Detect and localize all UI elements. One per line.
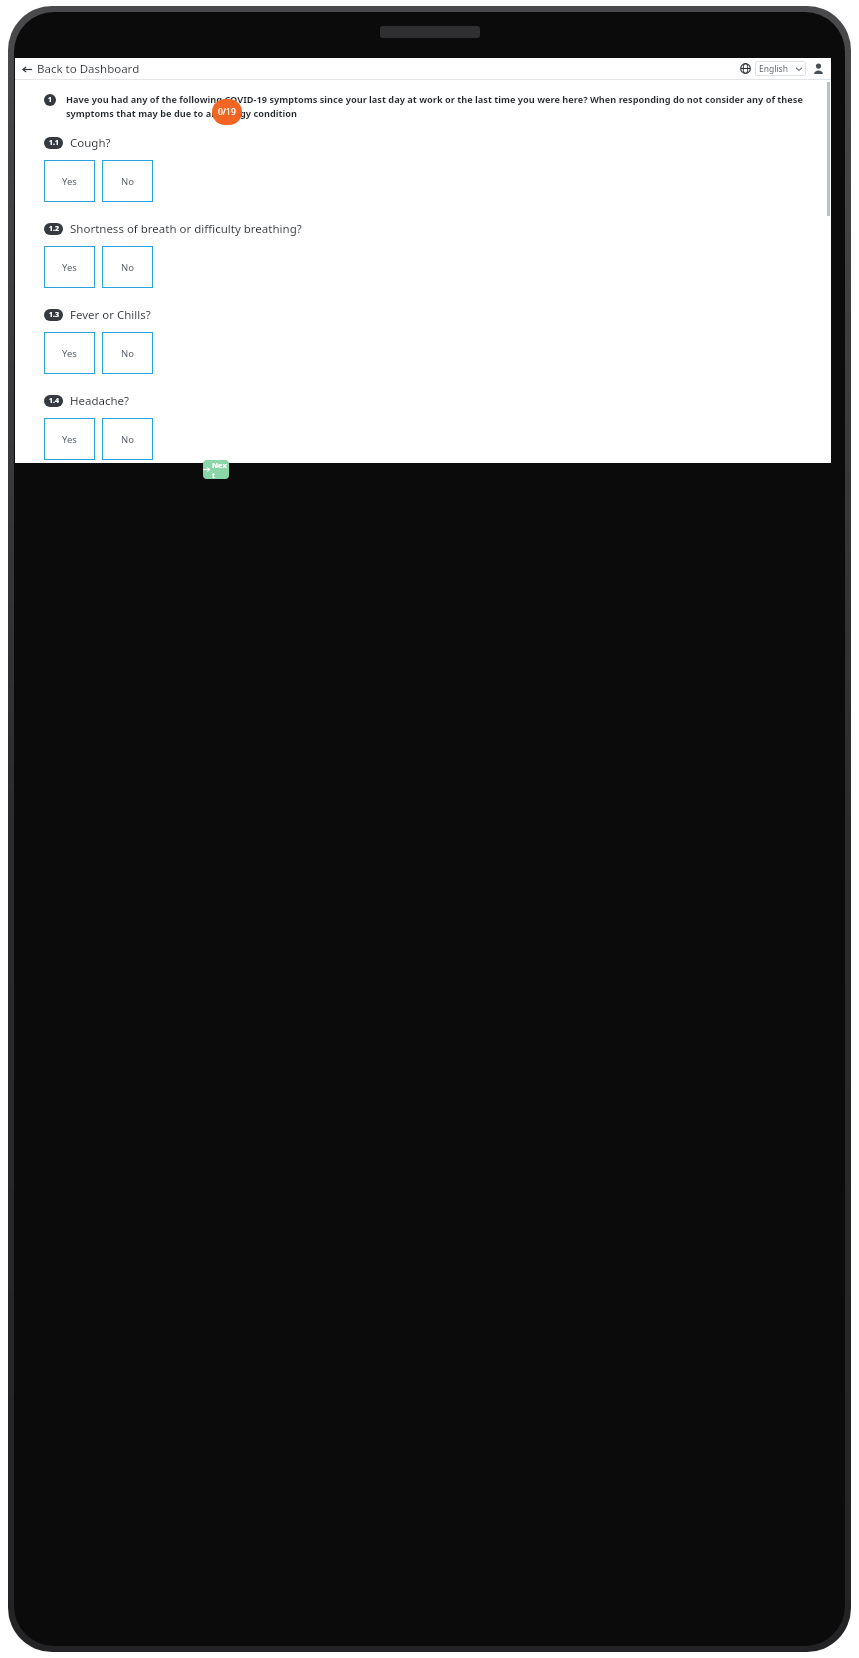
staticText: No (121, 347, 134, 360)
button[interactable]: Account (812, 62, 825, 75)
staticText: Cough? (70, 135, 111, 151)
staticText: 1 (48, 95, 53, 105)
staticText: Shortness of breath or difficulty breath… (70, 221, 302, 237)
button[interactable]: No (102, 418, 153, 460)
button[interactable]: Yes (44, 332, 95, 374)
staticText: 1.3 (49, 310, 59, 320)
staticText: Fever or Chills? (70, 307, 151, 323)
staticText: 1.4 (49, 396, 59, 406)
button[interactable]: No (102, 246, 153, 288)
button[interactable]: English (755, 61, 806, 76)
button[interactable]: Yes (44, 418, 95, 460)
button[interactable]: No (102, 160, 153, 202)
staticText: Next (212, 460, 229, 479)
button[interactable]: Next (203, 460, 229, 479)
staticText: Headache? (70, 393, 130, 409)
staticText: No (121, 175, 134, 188)
button[interactable]: Back to Dashboard (21, 59, 141, 79)
staticText: English (759, 63, 788, 75)
button[interactable]: Yes (44, 160, 95, 202)
staticText: Have you had any of the following COVID-… (66, 93, 817, 119)
staticText: Yes (62, 261, 77, 274)
staticText: 1.1 (49, 138, 59, 148)
button[interactable]: Language (740, 63, 751, 74)
staticText: No (121, 433, 134, 446)
staticText: Yes (62, 433, 77, 446)
button[interactable]: 0/19 (212, 99, 242, 125)
staticText: 0/19 (218, 106, 236, 118)
button[interactable]: Yes (44, 246, 95, 288)
staticText: Yes (62, 347, 77, 360)
staticText: Back to Dashboard (37, 61, 140, 77)
staticText: 1.2 (49, 224, 59, 234)
staticText: Yes (62, 175, 77, 188)
staticText: No (121, 261, 134, 274)
button[interactable]: No (102, 332, 153, 374)
